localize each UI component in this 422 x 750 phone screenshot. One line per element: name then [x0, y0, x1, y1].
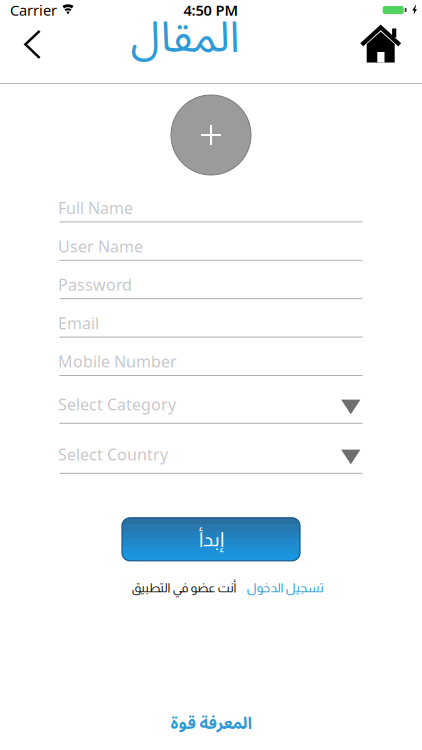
staticText: Select Country	[58, 444, 168, 465]
button[interactable]: إبدأ	[122, 518, 300, 561]
staticText: Email	[58, 312, 99, 334]
staticText: Mobile Number	[58, 351, 177, 372]
staticText: أنت عضو في التطبيق	[131, 581, 236, 595]
staticText: Password	[58, 274, 132, 295]
button[interactable]: Home	[360, 23, 422, 61]
staticText: User Name	[58, 236, 143, 257]
staticText: تسجيل الدخول	[246, 581, 323, 595]
staticText: Select Category	[58, 394, 176, 415]
button[interactable]: Add photo	[171, 95, 251, 175]
button[interactable]: Select Category	[59, 376, 362, 424]
staticText: المعرفة قوة	[170, 706, 252, 741]
staticText: Carrier	[10, 0, 57, 20]
staticText: إبدأ	[198, 528, 223, 550]
button[interactable]: Back	[0, 20, 41, 64]
staticText: المقال	[130, 0, 239, 83]
staticText: Full Name	[58, 197, 133, 218]
button[interactable]: Select Country	[59, 424, 362, 474]
staticText: 4:50 PM	[183, 0, 238, 20]
button[interactable]: تسجيل الدخول	[246, 581, 323, 595]
